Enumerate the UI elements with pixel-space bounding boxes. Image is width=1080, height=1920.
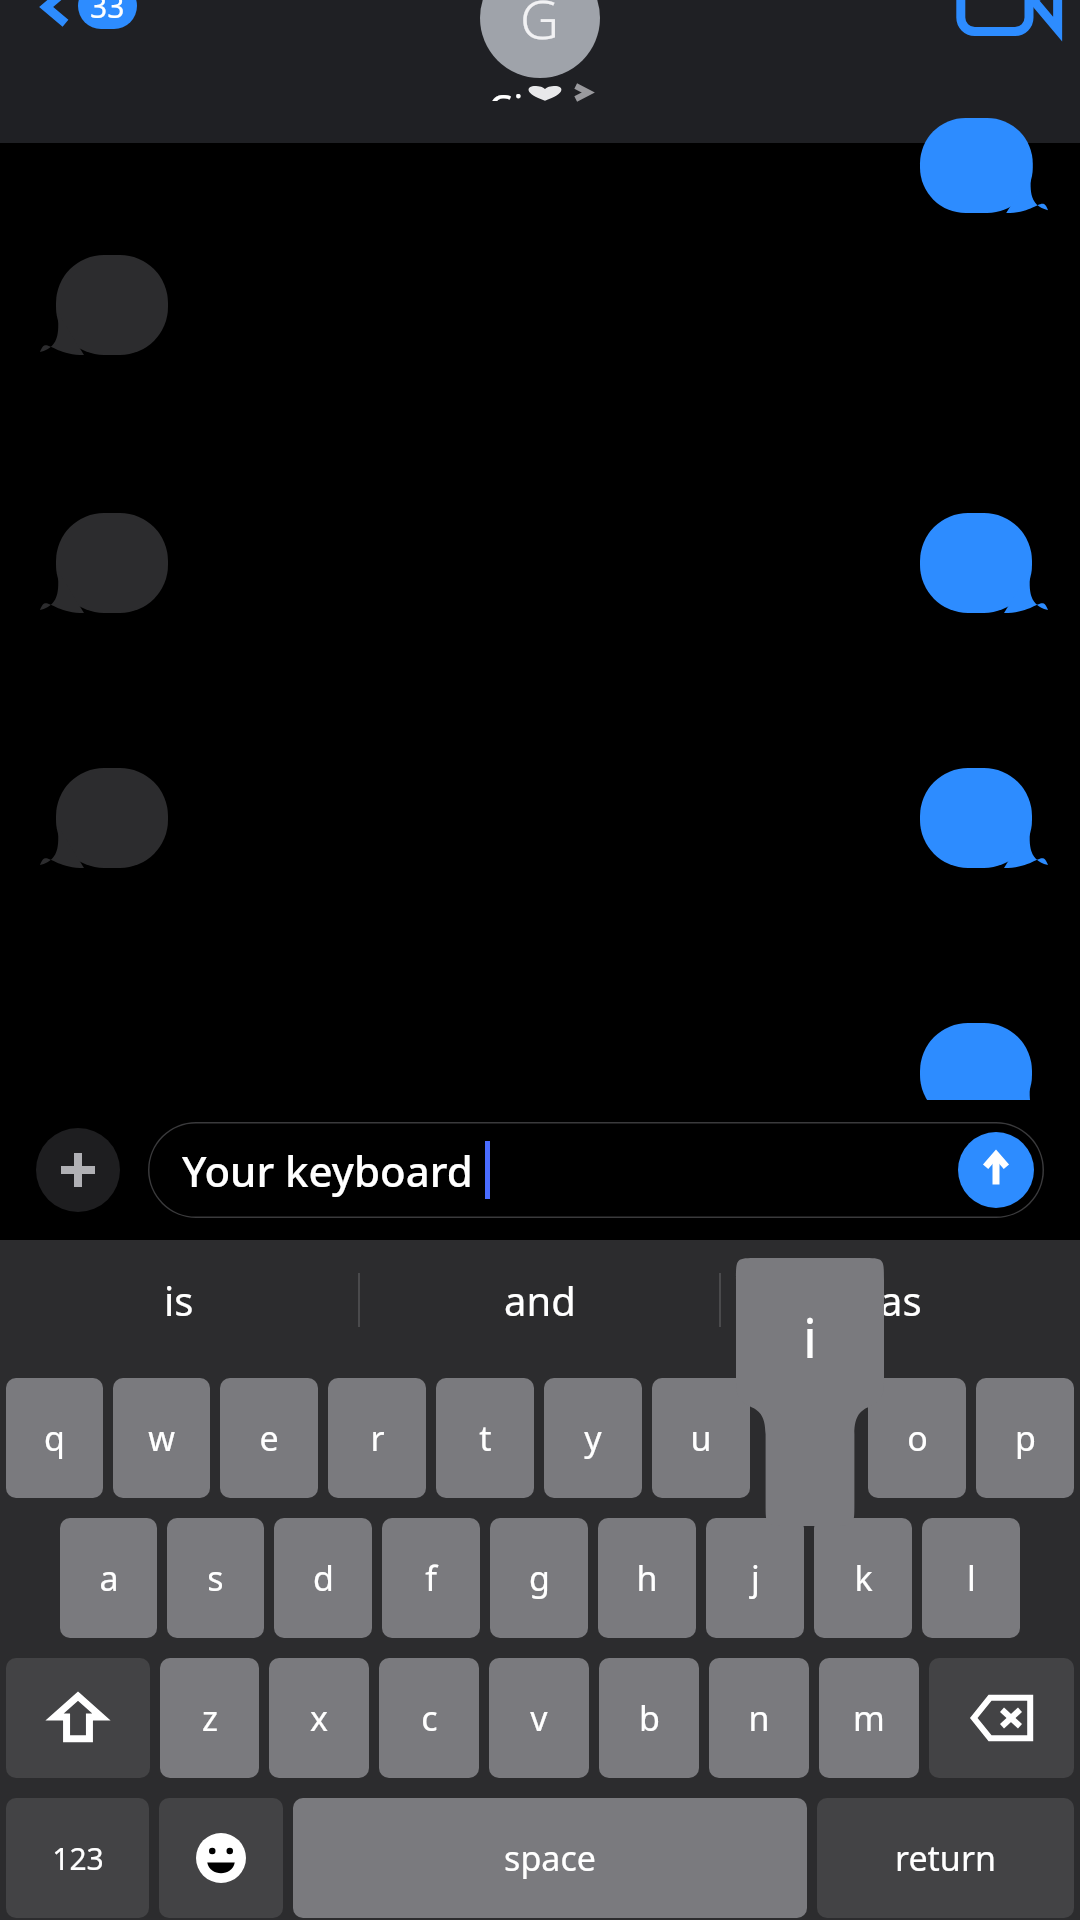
button[interactable]: l	[922, 1518, 1020, 1638]
staticText: y	[584, 1415, 602, 1461]
staticText: t	[479, 1415, 492, 1461]
button[interactable]: a	[60, 1518, 157, 1638]
button[interactable]: f	[382, 1518, 480, 1638]
staticText: c	[421, 1695, 438, 1741]
staticText: m	[853, 1695, 885, 1741]
button[interactable]: Emoji	[159, 1798, 283, 1918]
button[interactable]: t	[436, 1378, 534, 1498]
staticText: 2:03 PM	[852, 1163, 980, 1209]
button[interactable]: and	[360, 1240, 719, 1360]
staticText: g	[529, 1555, 550, 1601]
button[interactable]: G	[480, 0, 600, 101]
staticText: k	[854, 1555, 873, 1601]
staticText: 33	[90, 0, 125, 27]
button[interactable]: c	[379, 1658, 479, 1778]
button[interactable]: FaceTime video call	[952, 0, 1062, 54]
staticText: v	[530, 1695, 548, 1741]
button[interactable]: k	[814, 1518, 912, 1638]
button[interactable]: space	[293, 1798, 807, 1918]
staticText: o	[907, 1415, 928, 1461]
button[interactable]: d	[274, 1518, 372, 1638]
button[interactable]: n	[709, 1658, 809, 1778]
staticText: n	[748, 1695, 770, 1741]
button[interactable]: o	[868, 1378, 966, 1498]
staticText: x	[310, 1695, 328, 1741]
button[interactable]: h	[598, 1518, 696, 1638]
button[interactable]: Shift	[6, 1658, 150, 1778]
button[interactable]: i key	[736, 1258, 884, 1526]
staticText: Your keyboard	[182, 1142, 473, 1199]
button[interactable]: z	[160, 1658, 259, 1778]
button[interactable]: return	[817, 1798, 1074, 1918]
staticText: G	[520, 0, 560, 55]
button[interactable]: Back	[40, 0, 137, 34]
button[interactable]: u	[652, 1378, 750, 1498]
staticText: 123	[52, 1838, 104, 1879]
staticText: u	[690, 1415, 712, 1461]
button[interactable]: g	[490, 1518, 588, 1638]
staticText: h	[636, 1555, 658, 1601]
staticText: i	[803, 1300, 817, 1374]
staticText: w	[148, 1415, 175, 1461]
button[interactable]: Your keyboard	[148, 1122, 1044, 1218]
staticText: b	[639, 1695, 660, 1741]
staticText: is	[164, 1273, 194, 1327]
button[interactable]: w	[113, 1378, 210, 1498]
button[interactable]: s	[167, 1518, 264, 1638]
staticText: d	[313, 1555, 334, 1601]
button[interactable]: b	[599, 1658, 699, 1778]
staticText: j	[751, 1555, 760, 1601]
staticText: and	[504, 1273, 576, 1327]
button[interactable]: Send	[958, 1132, 1034, 1208]
staticText: l	[967, 1555, 976, 1601]
button[interactable]: x	[269, 1658, 369, 1778]
button[interactable]: m	[819, 1658, 919, 1778]
staticText: q	[44, 1415, 65, 1461]
staticText: r	[370, 1415, 385, 1461]
button[interactable]: r	[328, 1378, 426, 1498]
button[interactable]: e	[220, 1378, 318, 1498]
staticText: space	[504, 1835, 596, 1881]
staticText: Gi	[489, 84, 523, 101]
button[interactable]: is	[0, 1240, 358, 1360]
button[interactable]: 123	[6, 1798, 149, 1918]
staticText: e	[259, 1415, 279, 1461]
staticText: a	[99, 1555, 119, 1601]
staticText: as	[880, 1273, 922, 1327]
button[interactable]: j	[706, 1518, 804, 1638]
staticText: z	[202, 1695, 218, 1741]
staticText: p	[1015, 1415, 1036, 1461]
button[interactable]: Add attachment	[36, 1128, 120, 1212]
staticText: return	[895, 1835, 996, 1881]
button[interactable]: Backspace	[929, 1658, 1074, 1778]
button[interactable]: q	[6, 1378, 103, 1498]
button[interactable]: v	[489, 1658, 589, 1778]
button[interactable]: p	[976, 1378, 1074, 1498]
button[interactable]: y	[544, 1378, 642, 1498]
staticText: s	[207, 1555, 224, 1601]
staticText: f	[425, 1555, 437, 1601]
button[interactable]: as	[721, 1240, 1080, 1360]
